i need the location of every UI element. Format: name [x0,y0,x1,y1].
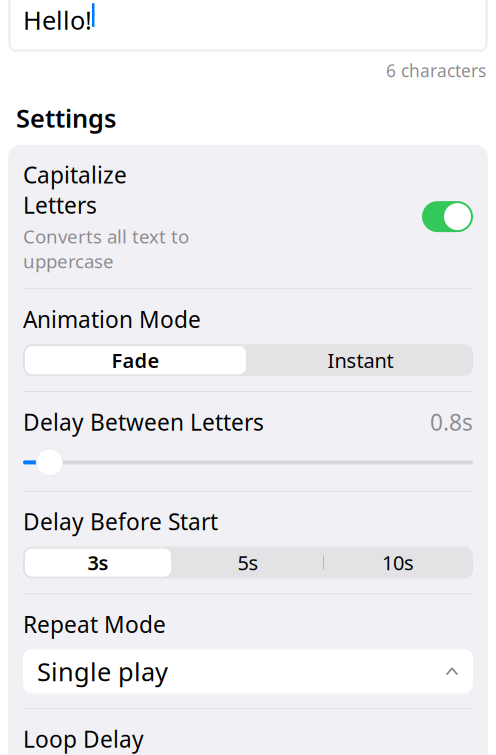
staticText: Loop Delay [23,724,144,754]
staticText: 10s [382,549,414,576]
button[interactable]: Fade [23,344,248,376]
button[interactable]: 5s [173,547,323,579]
button[interactable]: Instant [248,344,473,376]
staticText: Settings [16,101,116,135]
staticText: 3s [87,549,108,576]
staticText: Capitalize Letters [23,160,127,220]
staticText: 5s [237,549,258,576]
button[interactable]: 3s [23,547,173,579]
button[interactable]: Capitalize Letters [23,145,473,288]
staticText: Fade [111,347,159,373]
staticText: Converts all text to uppercase [23,224,189,273]
staticText: 6 characters [386,59,486,82]
staticText: Hello! [23,3,92,37]
staticText: Animation Mode [23,304,201,334]
staticText: Delay Before Start [23,506,218,537]
staticText: Repeat Mode [23,609,166,639]
button[interactable]: Single play [23,649,473,693]
staticText: Single play [37,654,168,688]
staticText: Instant [327,347,393,373]
staticText: 0.8s [430,407,473,437]
button[interactable]: 10s [323,547,473,579]
staticText: Delay Between Letters [23,407,264,437]
